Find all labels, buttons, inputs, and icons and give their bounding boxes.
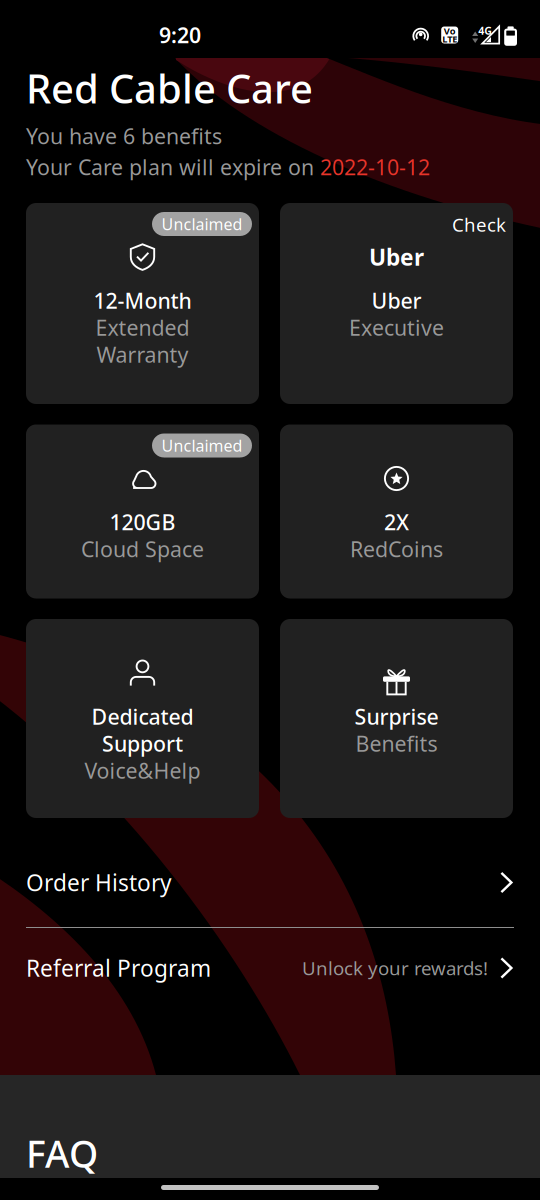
staticText: Warranty [96, 340, 188, 369]
staticText: RedCoins [350, 535, 443, 563]
staticText: FAQ [26, 1128, 98, 1178]
staticText: 2X [384, 508, 409, 536]
staticText: 2022-10-12 [320, 153, 430, 181]
staticText: Extended [95, 313, 189, 342]
button[interactable]: Check [280, 203, 513, 404]
staticText: LTE [442, 33, 457, 45]
staticText: 12-Month [93, 286, 191, 315]
staticText: 120GB [109, 508, 175, 536]
button[interactable]: Unclaimed [26, 203, 259, 404]
staticText: Order History [26, 867, 172, 897]
staticText: Referral Program [26, 953, 211, 983]
button[interactable]: Referral Program [0, 928, 540, 1008]
staticText: Your Care plan will expire on [26, 153, 320, 181]
staticText: Uber [371, 286, 421, 315]
button[interactable]: 2X [280, 424, 513, 598]
staticText: Voice&Help [84, 756, 200, 785]
staticText: Vo [444, 25, 456, 37]
staticText: Dedicated [91, 702, 193, 731]
button[interactable]: Unclaimed [26, 424, 259, 598]
button[interactable]: Dedicated [26, 619, 259, 818]
button[interactable]: Surprise [280, 619, 513, 818]
staticText: Unlock your rewards! [302, 956, 488, 980]
staticText: 4G [478, 23, 492, 38]
staticText: Unclaimed [161, 213, 242, 235]
button[interactable]: Order History [0, 838, 540, 927]
staticText: Cloud Space [81, 535, 204, 563]
staticText: You have 6 benefits [26, 122, 222, 150]
staticText: Executive [349, 313, 444, 342]
staticText: 9:20 [159, 21, 201, 49]
staticText: Red Cable Care [26, 61, 313, 114]
staticText: Unclaimed [161, 435, 242, 456]
staticText: Surprise [354, 702, 438, 731]
staticText: Benefits [355, 729, 437, 758]
staticText: Support [102, 729, 183, 758]
staticText: Check [452, 212, 506, 237]
staticText: Uber [369, 242, 424, 272]
